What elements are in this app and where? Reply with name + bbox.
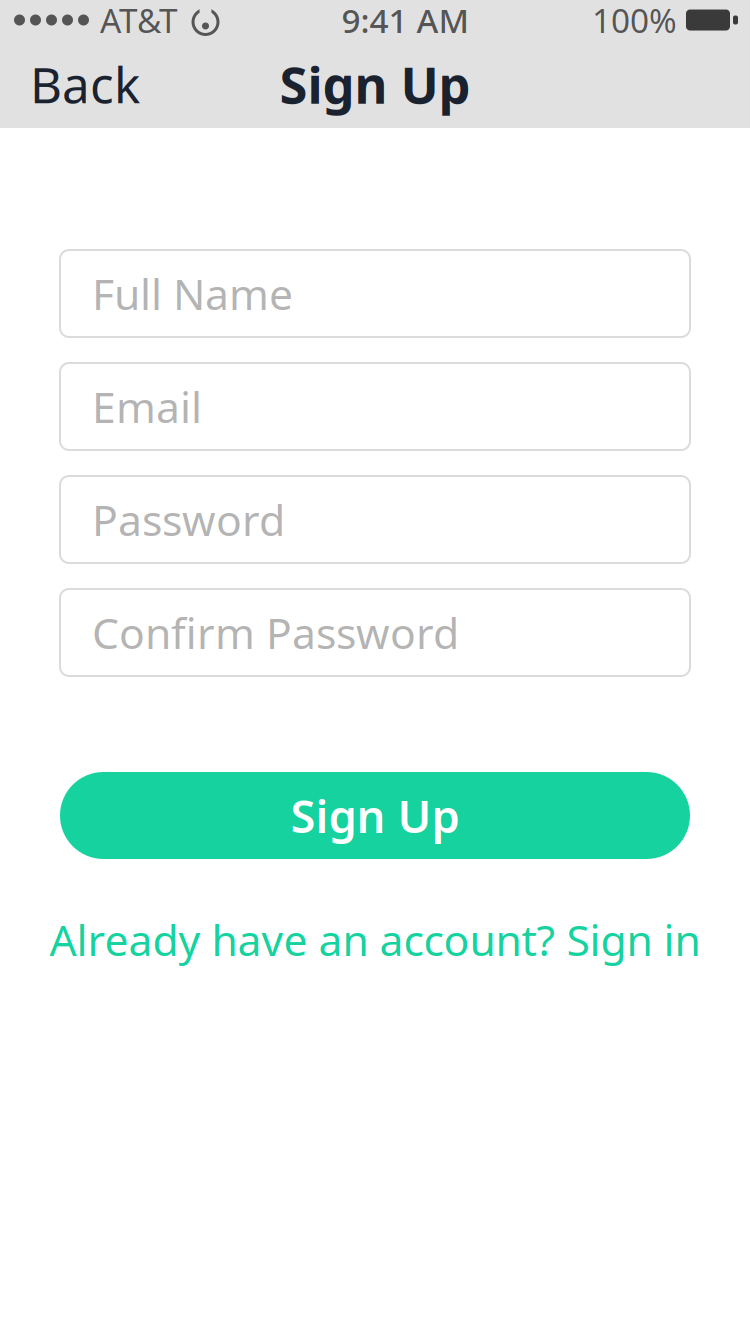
button[interactable]: Password [60,476,690,563]
staticText: Confirm Password [92,604,459,661]
staticText: Already have an account? Sign in [49,911,700,968]
staticText: 100% [592,0,677,42]
staticText: Password [92,491,285,548]
staticText: Email [92,378,202,435]
button[interactable]: Back [16,39,154,129]
button[interactable]: Confirm Password [60,589,690,676]
button[interactable]: Already have an account? Sign in [29,901,720,978]
staticText: 9:41 AM [341,0,469,42]
staticText: Back [30,51,140,117]
staticText: Sign Up [279,50,470,118]
staticText: Sign Up [290,785,459,846]
staticText: Full Name [92,265,293,322]
button[interactable]: Sign Up [60,772,690,859]
staticText: AT&T [100,0,178,42]
button[interactable]: Email [60,363,690,450]
button[interactable]: Full Name [60,250,690,337]
